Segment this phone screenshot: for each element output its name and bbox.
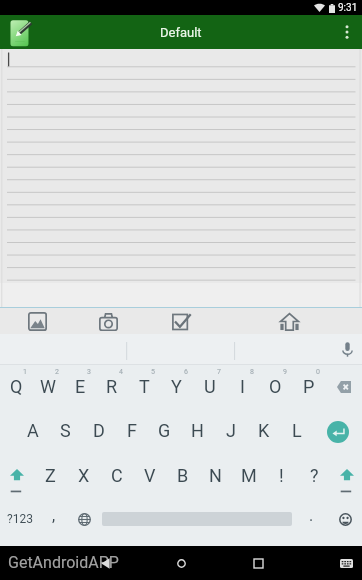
staticText: G [158,420,171,441]
staticText: 3 [87,368,91,376]
staticText: P [303,376,315,397]
button[interactable]: I [226,365,259,408]
staticText: D [93,420,105,441]
staticText: Default [160,25,202,40]
button[interactable]: Enter [313,408,362,452]
button[interactable]: J [214,408,247,452]
staticText: . [309,506,314,525]
button[interactable]: S [49,408,82,452]
staticText: S [60,420,71,441]
staticText: X [78,465,90,486]
button[interactable]: U [193,365,226,408]
button[interactable]: Switch keyboard [330,546,362,580]
staticText: W [40,376,56,397]
button[interactable]: C [100,452,133,498]
button[interactable]: G [148,408,181,452]
staticText: E [75,376,86,397]
staticText: Z [45,465,56,486]
button[interactable]: More options [332,15,362,49]
staticText: , [52,506,56,525]
staticText: R [106,376,118,397]
button[interactable]: Shift [0,452,34,498]
staticText: 6 [184,368,188,376]
staticText: ! [279,465,284,486]
button[interactable]: Change language [68,495,101,543]
button[interactable]: F [115,408,148,452]
staticText: 9:31 [338,2,358,14]
button[interactable]: Y [160,365,193,408]
button[interactable]: Recent apps [242,546,274,580]
button[interactable]: R [96,365,128,408]
button[interactable]: W [32,365,64,408]
button[interactable]: P [292,365,325,408]
staticText: Q [10,376,23,397]
button[interactable]: T [128,365,160,408]
button[interactable]: X [67,452,100,498]
button[interactable]: Checklist [163,309,197,334]
button[interactable]: L [280,408,313,452]
button[interactable]: M [232,452,265,498]
staticText: ?123 [7,512,33,526]
button[interactable]: H [181,408,214,452]
button[interactable]: ? [298,452,331,498]
button[interactable]: Space [101,495,294,543]
staticText: I [240,376,245,397]
button[interactable]: Back [89,546,121,580]
button[interactable]: ?123 [0,495,39,543]
button[interactable]: Backspace [325,365,362,408]
staticText: 8 [250,368,254,376]
button[interactable]: ! [265,452,298,498]
staticText: T [139,376,150,397]
staticText: 0 [316,368,320,376]
button[interactable]: Take photo [91,309,125,334]
button[interactable]: O [259,365,292,408]
staticText: K [258,420,270,441]
staticText: 9 [283,368,287,376]
staticText: M [241,465,257,486]
staticText: C [111,465,123,486]
staticText: GetAndroidAPP [8,553,119,572]
staticText: L [292,420,302,441]
button[interactable]: Q [0,365,32,408]
staticText: U [204,376,216,397]
button[interactable]: V [133,452,166,498]
button[interactable]: Home [165,546,197,580]
button[interactable]: Shift [331,452,362,498]
staticText: B [177,465,189,486]
button[interactable]: Notes [4,15,34,49]
button[interactable]: D [82,408,115,452]
button[interactable]: Voice input [332,334,362,365]
staticText: V [144,465,156,486]
button[interactable]: E [64,365,96,408]
button[interactable]: Emoji [329,495,362,543]
staticText: 2 [55,368,59,376]
button[interactable]: Insert image [20,309,54,334]
staticText: J [226,420,236,441]
staticText: 5 [151,368,155,376]
button[interactable]: Z [34,452,67,498]
button[interactable]: N [199,452,232,498]
staticText: Y [171,376,182,397]
staticText: F [127,420,137,441]
staticText: 1 [23,368,27,376]
staticText: 4 [119,368,123,376]
button[interactable]: K [247,408,280,452]
staticText: 7 [217,368,221,376]
staticText: ? [310,465,319,486]
staticText: N [209,465,222,486]
button[interactable]: . [294,495,329,543]
staticText: H [191,420,204,441]
button[interactable]: Share [272,309,306,334]
button[interactable]: A [16,408,49,452]
button[interactable]: , [39,495,68,543]
button[interactable]: B [166,452,199,498]
staticText: O [269,376,282,397]
staticText: A [27,420,39,441]
